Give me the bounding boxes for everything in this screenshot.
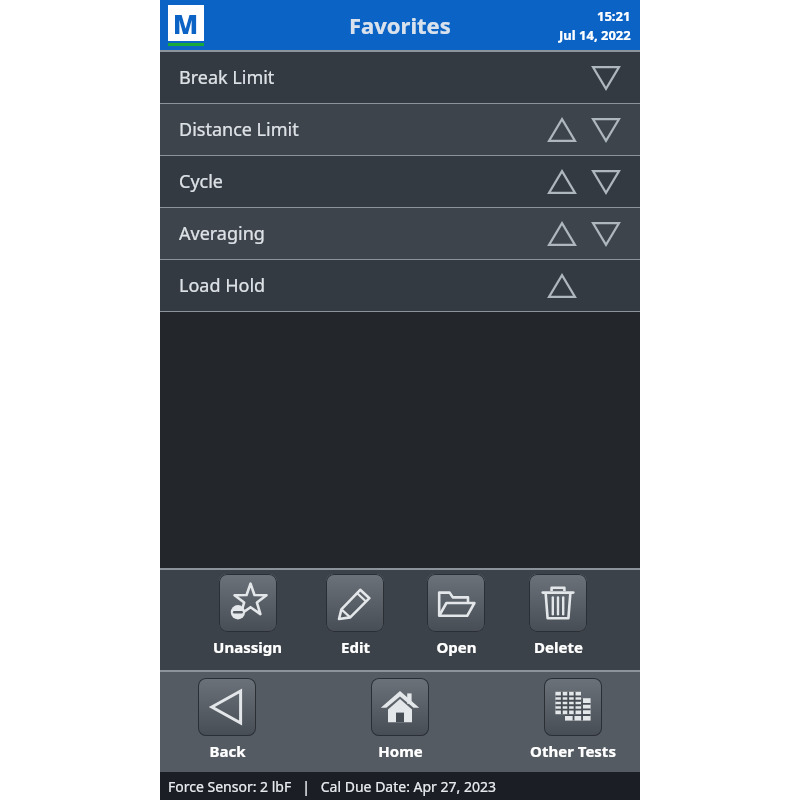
button[interactable]: Move up bbox=[546, 270, 578, 302]
staticText: Unassign bbox=[213, 637, 282, 657]
staticText: Delete bbox=[534, 637, 583, 657]
button[interactable]: Cycle bbox=[160, 156, 640, 207]
button[interactable]: Delete bbox=[529, 574, 587, 657]
button[interactable]: Edit bbox=[326, 574, 384, 657]
button[interactable]: Move down bbox=[590, 62, 622, 94]
staticText: Jul 14, 2022 bbox=[559, 26, 631, 44]
staticText: Distance Limit bbox=[179, 117, 299, 142]
button[interactable]: Move down bbox=[590, 218, 622, 250]
button[interactable]: Move up bbox=[546, 166, 578, 198]
staticText: Load Hold bbox=[179, 273, 266, 298]
button[interactable]: Unassign bbox=[213, 574, 282, 657]
button[interactable]: Move down bbox=[590, 114, 622, 146]
staticText: Cycle bbox=[179, 169, 223, 194]
staticText: Home bbox=[378, 741, 423, 761]
staticText: Break Limit bbox=[179, 65, 275, 90]
staticText: 15:21 bbox=[597, 7, 631, 25]
staticText: Other Tests bbox=[530, 741, 616, 761]
staticText: Force Sensor: 2 lbF | Cal Due Date: Apr … bbox=[168, 777, 496, 796]
button[interactable]: Home bbox=[345, 678, 455, 761]
button[interactable]: Break Limit bbox=[160, 52, 640, 103]
button[interactable]: Move up bbox=[546, 114, 578, 146]
button[interactable]: Move up bbox=[546, 218, 578, 250]
staticText: Favorites bbox=[349, 10, 451, 40]
staticText: Back bbox=[209, 741, 246, 761]
button[interactable]: Back bbox=[172, 678, 282, 761]
staticText: Open bbox=[436, 637, 477, 657]
button[interactable]: Averaging bbox=[160, 208, 640, 259]
staticText: Edit bbox=[341, 637, 370, 657]
button[interactable]: Distance Limit bbox=[160, 104, 640, 155]
button[interactable]: Open bbox=[427, 574, 485, 657]
button[interactable]: Other Tests bbox=[518, 678, 628, 761]
staticText: M bbox=[173, 6, 199, 41]
button[interactable]: Move down bbox=[590, 166, 622, 198]
staticText: Averaging bbox=[179, 221, 265, 246]
button[interactable]: Load Hold bbox=[160, 260, 640, 311]
